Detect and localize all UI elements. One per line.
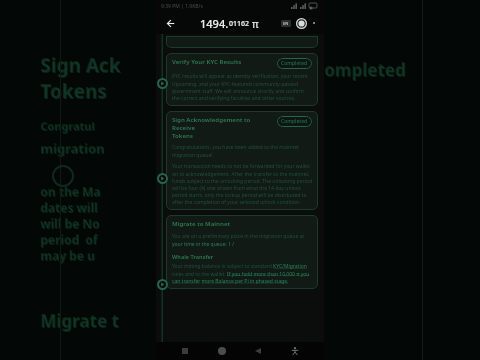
- staticText: Your mining balance is subject to standa…: [172, 263, 312, 284]
- staticText: dates will: [41, 200, 99, 216]
- staticText: ompleted: [324, 58, 406, 81]
- button[interactable]: More options: [310, 19, 318, 27]
- staticText: Completed: [281, 60, 308, 67]
- staticText: Completed: [281, 118, 308, 125]
- staticText: Whale Transfer: [172, 253, 214, 260]
- button[interactable]: Language EN: [281, 20, 291, 27]
- staticText: EN: [283, 21, 289, 26]
- staticText: migration: [41, 140, 106, 158]
- button[interactable]: Completed: [277, 58, 312, 69]
- button[interactable]: Migrate to Mainnet: [166, 215, 318, 289]
- staticText: Tokens: [41, 79, 108, 105]
- staticText: Migrate t: [41, 310, 120, 333]
- staticText: on the Ma: [41, 184, 102, 200]
- staticText: period of: [40, 231, 98, 247]
- button[interactable]: Accessibility: [287, 343, 303, 359]
- staticText: Migrate t: [40, 309, 119, 332]
- staticText: migration: [40, 139, 105, 157]
- staticText: will be No: [41, 216, 101, 232]
- button[interactable]: Back: [250, 343, 266, 359]
- staticText: Congratul: [40, 118, 95, 133]
- button[interactable]: Home: [214, 343, 230, 359]
- staticText: Tokens: [40, 78, 107, 104]
- staticText: Sign Acknowledgement to Receive Tokens: [172, 116, 273, 140]
- staticText: dates will: [40, 199, 98, 215]
- button[interactable]: Recent apps: [177, 343, 193, 359]
- staticText: on the Ma: [40, 183, 101, 199]
- staticText: 9:39 PM | 1.9KB/s: [161, 3, 203, 10]
- staticText: will be No: [40, 215, 100, 231]
- staticText: 1494.: [200, 16, 229, 31]
- staticText: ompleted: [325, 59, 407, 82]
- staticText: Verify Your KYC Results: [172, 58, 273, 66]
- button[interactable]: Back: [162, 15, 178, 31]
- staticText: may be u: [40, 247, 95, 263]
- staticText: Congratul: [41, 119, 96, 134]
- staticText: You are on a preliminary place in the mi…: [172, 233, 312, 247]
- button[interactable]: Verify Your KYC Results: [166, 53, 318, 106]
- staticText: may be u: [41, 248, 96, 264]
- staticText: KYC results will appear as identity veri…: [172, 73, 312, 101]
- staticText: Sign Ack: [41, 53, 122, 79]
- staticText: π: [252, 17, 259, 31]
- staticText: Migrate to Mainnet: [172, 220, 231, 228]
- button[interactable]: [166, 36, 318, 48]
- button[interactable]: Completed: [277, 116, 312, 127]
- staticText: period of: [41, 232, 99, 248]
- button[interactable]: Globe: [294, 16, 308, 30]
- staticText: Sign Ack: [40, 52, 121, 78]
- staticText: Your transaction needs to not be forward…: [172, 163, 312, 205]
- staticText: Congratulations, you have been added to …: [172, 144, 312, 158]
- staticText: 01162: [229, 19, 250, 29]
- button[interactable]: Sign Acknowledgement to Receive Tokens: [166, 111, 318, 210]
